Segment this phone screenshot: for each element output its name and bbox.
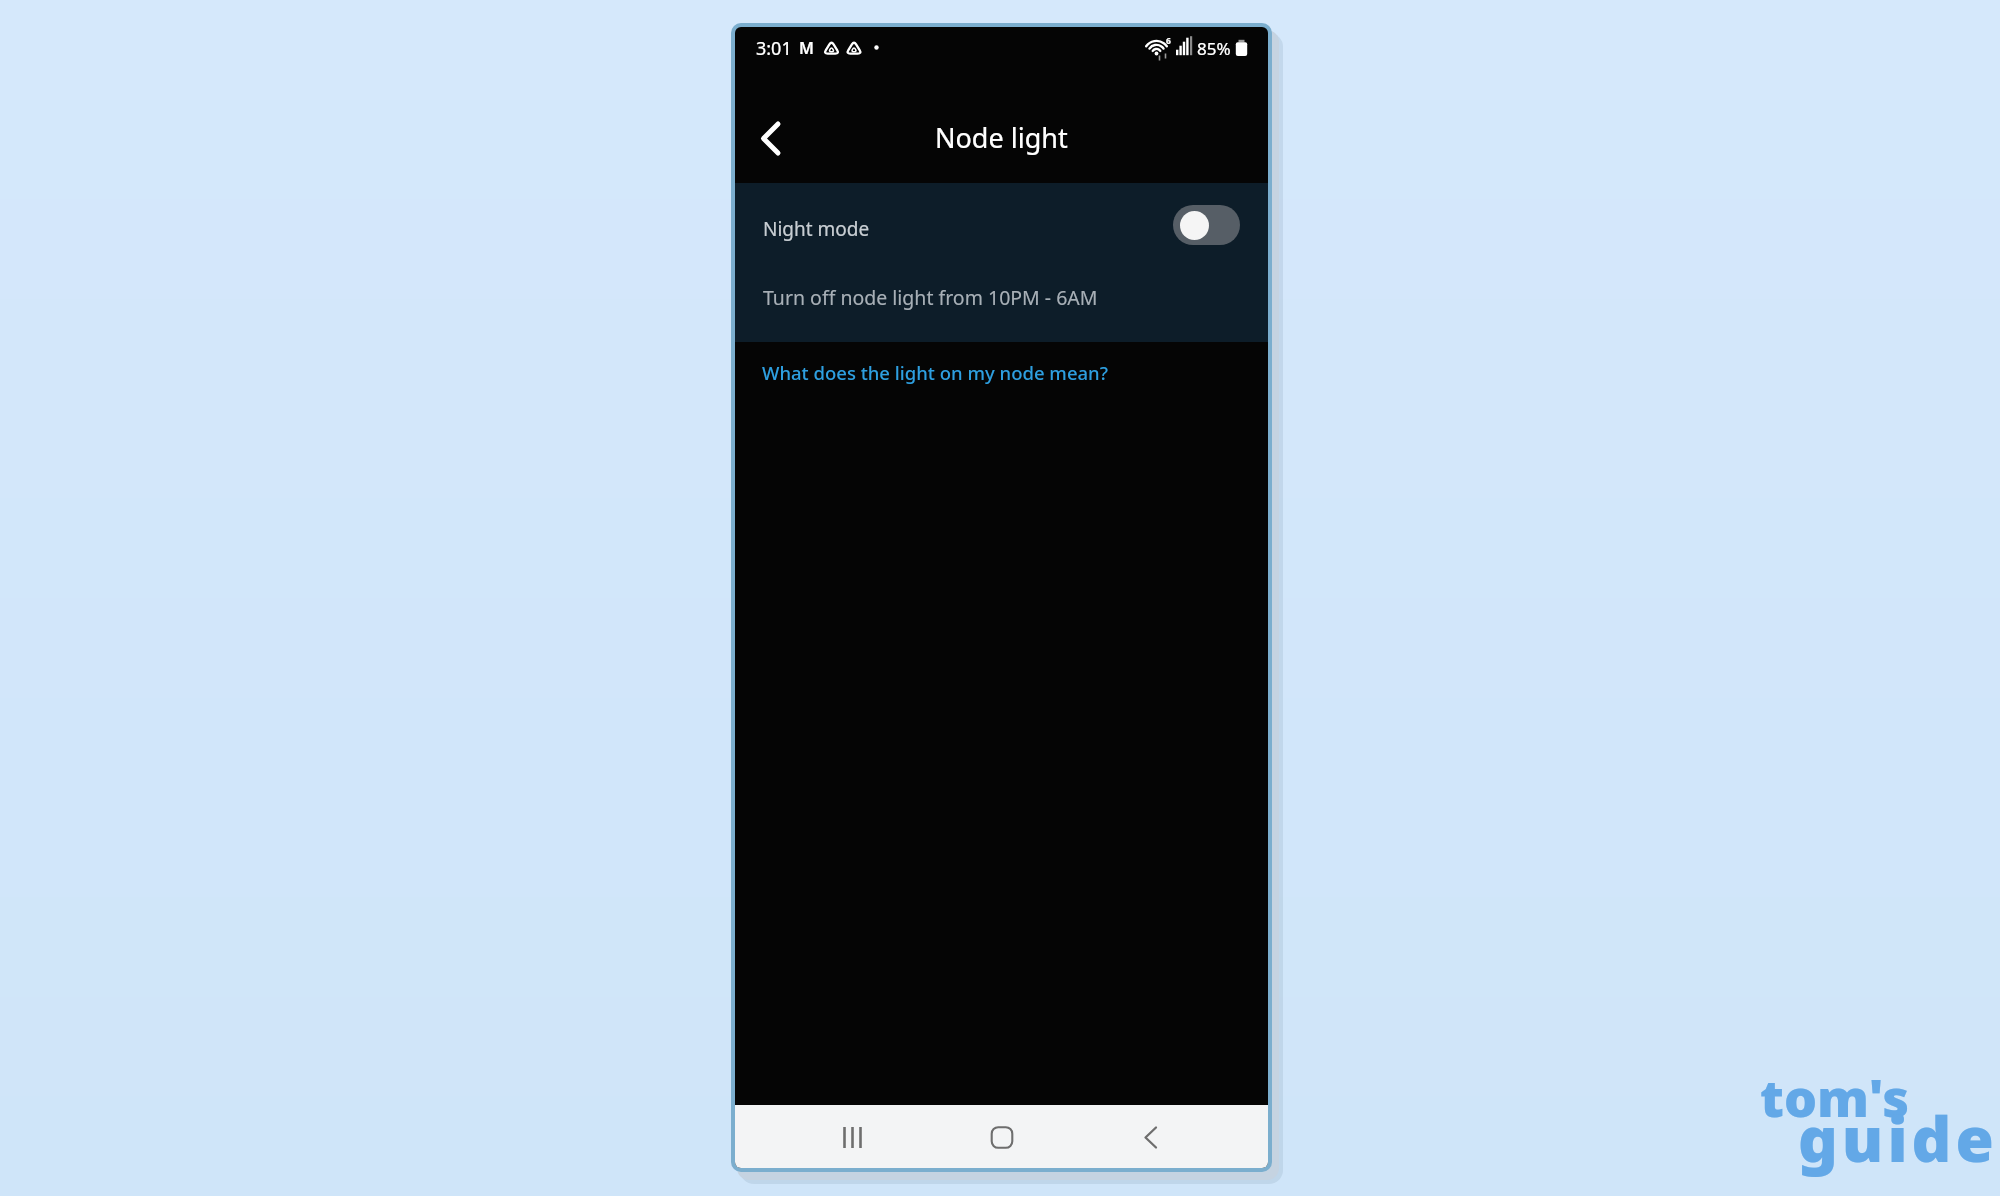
staticText: 6 xyxy=(1166,35,1171,47)
staticText: Night mode xyxy=(763,216,870,242)
staticText: Turn off node light from 10PM - 6AM xyxy=(763,284,1098,311)
staticText: 85% xyxy=(1197,37,1231,60)
staticText: M xyxy=(799,37,814,59)
staticText: What does the light on my node mean? xyxy=(762,360,1108,385)
staticText: 3:01 xyxy=(756,36,792,61)
staticText: tom's xyxy=(1760,1061,1910,1132)
staticText: Node light xyxy=(935,119,1068,156)
staticText: guide xyxy=(1798,1096,1998,1180)
